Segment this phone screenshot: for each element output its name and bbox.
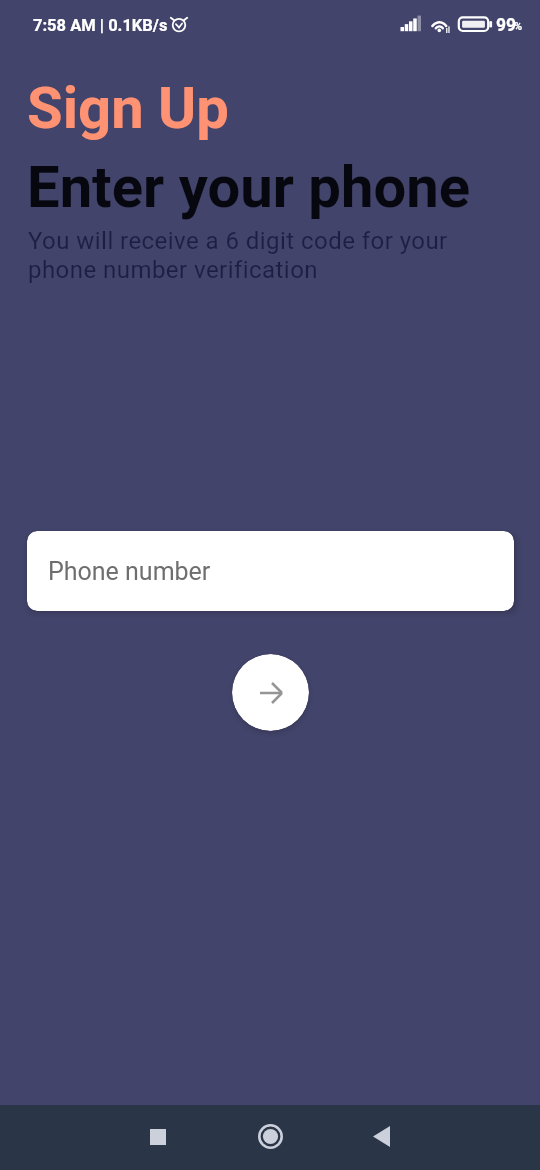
staticText: 99 <box>496 15 517 36</box>
staticText: Enter your phone <box>27 153 471 221</box>
staticText: 7:58 AM | 0.1KB/s <box>33 16 168 35</box>
staticText: You will receive a 6 digit code for your… <box>28 227 448 284</box>
staticText: % <box>514 20 523 33</box>
button[interactable]: Home <box>240 1105 300 1170</box>
button[interactable]: Continue <box>232 654 309 731</box>
staticText: Phone number <box>48 557 211 586</box>
button[interactable]: Back <box>351 1105 411 1170</box>
button[interactable]: Phone number <box>27 531 514 611</box>
button[interactable]: Recents <box>128 1105 188 1170</box>
staticText: Sign Up <box>27 74 229 142</box>
